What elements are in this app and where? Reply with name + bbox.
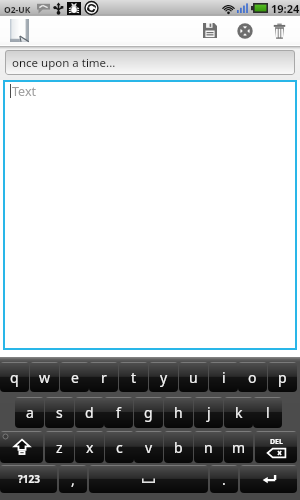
button[interactable]: Save bbox=[196, 16, 224, 45]
staticText: x bbox=[86, 438, 94, 457]
button[interactable]: o bbox=[238, 362, 267, 392]
button[interactable]: j bbox=[194, 397, 223, 428]
button[interactable]: k bbox=[224, 397, 253, 428]
button[interactable]: Enter bbox=[240, 465, 297, 493]
staticText: . bbox=[222, 470, 226, 489]
staticText: f bbox=[116, 403, 121, 422]
button[interactable]: d bbox=[75, 397, 104, 428]
staticText: ?123 bbox=[18, 472, 40, 486]
button[interactable]: v bbox=[134, 431, 163, 463]
button[interactable]: Delete bbox=[265, 16, 293, 45]
button[interactable]: Cancel bbox=[231, 16, 259, 45]
button[interactable]: n bbox=[194, 431, 223, 463]
staticText: k bbox=[235, 403, 243, 422]
button[interactable]: r bbox=[89, 362, 118, 392]
button[interactable]: s bbox=[45, 397, 74, 428]
button[interactable]: Text bbox=[3, 80, 297, 350]
button[interactable]: m bbox=[224, 431, 253, 463]
button[interactable]: f bbox=[104, 397, 133, 428]
button[interactable]: Note bbox=[6, 17, 32, 44]
button[interactable]: z bbox=[45, 431, 74, 463]
button[interactable]: e bbox=[60, 362, 89, 392]
staticText: p bbox=[278, 368, 287, 387]
staticText: r bbox=[101, 368, 107, 387]
button[interactable]: y bbox=[149, 362, 178, 392]
staticText: z bbox=[56, 438, 63, 457]
staticText: , bbox=[71, 470, 75, 489]
button[interactable]: h bbox=[164, 397, 193, 428]
staticText: once upon a time... bbox=[12, 55, 116, 71]
staticText: e bbox=[71, 368, 79, 387]
staticText: q bbox=[10, 368, 19, 387]
staticText: c bbox=[116, 438, 123, 457]
staticText: h bbox=[174, 403, 183, 422]
button[interactable]: c bbox=[105, 431, 134, 463]
button[interactable]: Space bbox=[89, 465, 208, 493]
staticText: a bbox=[26, 403, 34, 422]
button[interactable]: l bbox=[253, 397, 282, 428]
staticText: m bbox=[232, 438, 246, 457]
staticText: w bbox=[39, 368, 51, 387]
button[interactable]: Comma bbox=[59, 465, 87, 493]
staticText: n bbox=[204, 438, 213, 457]
button[interactable]: ?123 bbox=[0, 465, 57, 493]
staticText: l bbox=[266, 403, 270, 422]
button[interactable]: Shift bbox=[0, 431, 43, 463]
staticText: b bbox=[174, 438, 183, 457]
button[interactable]: q bbox=[0, 362, 29, 392]
button[interactable]: i bbox=[209, 362, 238, 392]
button[interactable]: w bbox=[30, 362, 59, 392]
staticText: Text bbox=[12, 83, 37, 100]
button[interactable]: x bbox=[75, 431, 104, 463]
staticText: u bbox=[189, 368, 198, 387]
staticText: DEL bbox=[270, 437, 283, 447]
staticText: i bbox=[222, 368, 226, 387]
staticText: o bbox=[248, 368, 257, 387]
staticText: g bbox=[144, 403, 153, 422]
staticText: O2-UK bbox=[4, 4, 31, 16]
button[interactable]: a bbox=[15, 397, 44, 428]
button[interactable]: Period bbox=[210, 465, 238, 493]
staticText: s bbox=[56, 403, 63, 422]
button[interactable]: b bbox=[164, 431, 193, 463]
staticText: 19:24 bbox=[271, 1, 300, 16]
button[interactable]: u bbox=[179, 362, 208, 392]
button[interactable]: g bbox=[134, 397, 163, 428]
staticText: v bbox=[145, 438, 153, 457]
staticText: t bbox=[131, 368, 137, 387]
staticText: j bbox=[207, 403, 211, 422]
button[interactable]: p bbox=[268, 362, 297, 392]
staticText: y bbox=[160, 368, 168, 387]
button[interactable]: once upon a time... bbox=[5, 50, 295, 75]
button[interactable]: Delete bbox=[255, 431, 297, 463]
staticText: d bbox=[85, 403, 94, 422]
button[interactable]: t bbox=[119, 362, 148, 392]
